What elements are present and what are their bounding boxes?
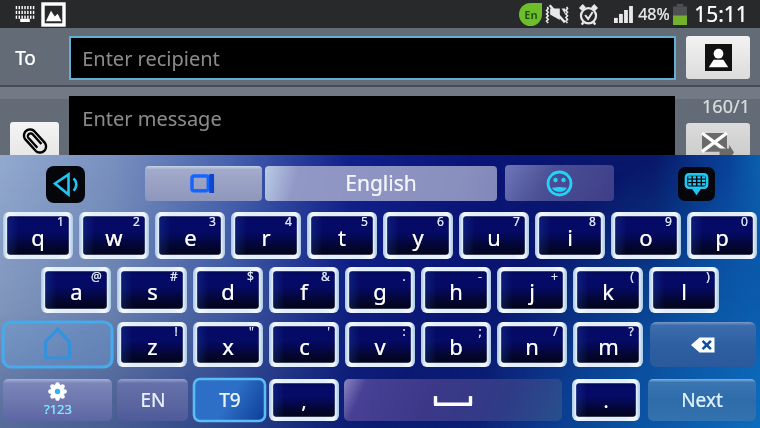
staticText: y (412, 222, 424, 252)
staticText: l (681, 276, 687, 306)
staticText: , (301, 388, 307, 414)
staticText: b (449, 331, 463, 361)
staticText: ) (706, 268, 710, 284)
button[interactable]: , (269, 379, 339, 421)
button[interactable]: e (155, 212, 225, 259)
staticText: EN (140, 387, 166, 413)
staticText: ; (478, 323, 482, 339)
button[interactable]: x (193, 322, 263, 367)
staticText: Enter recipient (82, 45, 220, 72)
button[interactable]: w (79, 212, 149, 259)
staticText: + (551, 268, 558, 284)
button[interactable]: Delete (650, 322, 756, 367)
button[interactable]: Enter message (69, 96, 675, 183)
staticText: Enter message (82, 105, 222, 132)
staticText: k (602, 276, 614, 306)
button[interactable]: Next (648, 379, 756, 421)
button[interactable]: q (3, 212, 73, 259)
button[interactable]: EN (117, 379, 188, 421)
staticText: i (567, 222, 573, 252)
staticText: 5 (361, 213, 368, 229)
staticText: c (299, 331, 310, 361)
staticText: d (221, 276, 235, 306)
staticText: To (15, 45, 36, 71)
button[interactable]: u (459, 212, 529, 259)
staticText: 15:11 (694, 0, 748, 28)
staticText: 8 (589, 213, 596, 229)
staticText: t (338, 222, 346, 252)
staticText: En (524, 7, 538, 22)
button[interactable]: t (307, 212, 377, 259)
button[interactable]: . (572, 379, 640, 421)
staticText: Next (681, 387, 723, 413)
staticText: w (105, 222, 123, 252)
button[interactable]: i (535, 212, 605, 259)
button[interactable]: k (573, 267, 643, 313)
button[interactable]: f (269, 267, 339, 313)
button[interactable]: Send message (686, 123, 750, 168)
staticText: j (529, 276, 535, 306)
button[interactable]: a (41, 267, 111, 313)
button[interactable]: ?123 (3, 379, 112, 421)
button[interactable]: m (573, 322, 643, 367)
staticText: 9 (665, 213, 672, 229)
staticText: h (449, 276, 463, 306)
button[interactable]: y (383, 212, 453, 259)
staticText: 2 (133, 213, 140, 229)
staticText: p (715, 222, 729, 252)
staticText: / (553, 323, 558, 339)
button[interactable]: j (497, 267, 567, 313)
button[interactable]: Hide keyboard (678, 167, 715, 201)
button[interactable]: Voice input (46, 166, 85, 203)
button[interactable]: s (117, 267, 187, 313)
staticText: English (345, 169, 417, 198)
staticText: # (170, 268, 178, 284)
button[interactable]: Enter recipient (69, 36, 676, 80)
staticText: o (639, 222, 653, 252)
button[interactable]: v (345, 322, 415, 367)
button[interactable]: c (269, 322, 339, 367)
staticText: x (222, 331, 234, 361)
staticText: ( (630, 268, 634, 284)
staticText: v (374, 331, 386, 361)
staticText: 160/1 (702, 94, 750, 119)
staticText: @ (91, 268, 102, 284)
staticText: - (478, 268, 482, 284)
button[interactable]: p (687, 212, 757, 259)
staticText: $ (247, 268, 254, 284)
button[interactable]: d (193, 267, 263, 313)
button[interactable]: T9 (194, 379, 265, 421)
staticText: 1 (57, 213, 64, 229)
button[interactable]: Shift (3, 322, 112, 367)
staticText: " (249, 323, 254, 339)
staticText: u (487, 222, 501, 252)
button[interactable]: Emoji (505, 165, 614, 201)
staticText: s (147, 276, 158, 306)
staticText: f (300, 276, 308, 306)
button[interactable]: o (611, 212, 681, 259)
staticText: 6 (437, 213, 444, 229)
button[interactable]: b (421, 322, 491, 367)
button[interactable]: r (231, 212, 301, 259)
button[interactable]: Keyboard (15, 6, 35, 22)
staticText: ? (628, 323, 634, 339)
button[interactable]: Space (344, 379, 562, 421)
button[interactable]: Contacts (686, 36, 750, 79)
button[interactable]: Image (43, 4, 64, 25)
button[interactable]: n (497, 322, 567, 367)
button[interactable]: g (345, 267, 415, 313)
staticText: . (402, 268, 406, 284)
staticText: ' (327, 323, 330, 339)
staticText: 0 (741, 213, 748, 229)
button[interactable]: English (265, 166, 497, 201)
staticText: 7 (513, 213, 520, 229)
button[interactable]: Attach (10, 122, 59, 158)
button[interactable]: l (649, 267, 719, 313)
button[interactable]: Handwriting (145, 166, 262, 201)
button[interactable]: z (117, 322, 187, 367)
staticText: 4 (285, 213, 292, 229)
button[interactable]: h (421, 267, 491, 313)
staticText: z (147, 331, 158, 361)
staticText: 3 (209, 213, 216, 229)
staticText: . (603, 388, 609, 414)
